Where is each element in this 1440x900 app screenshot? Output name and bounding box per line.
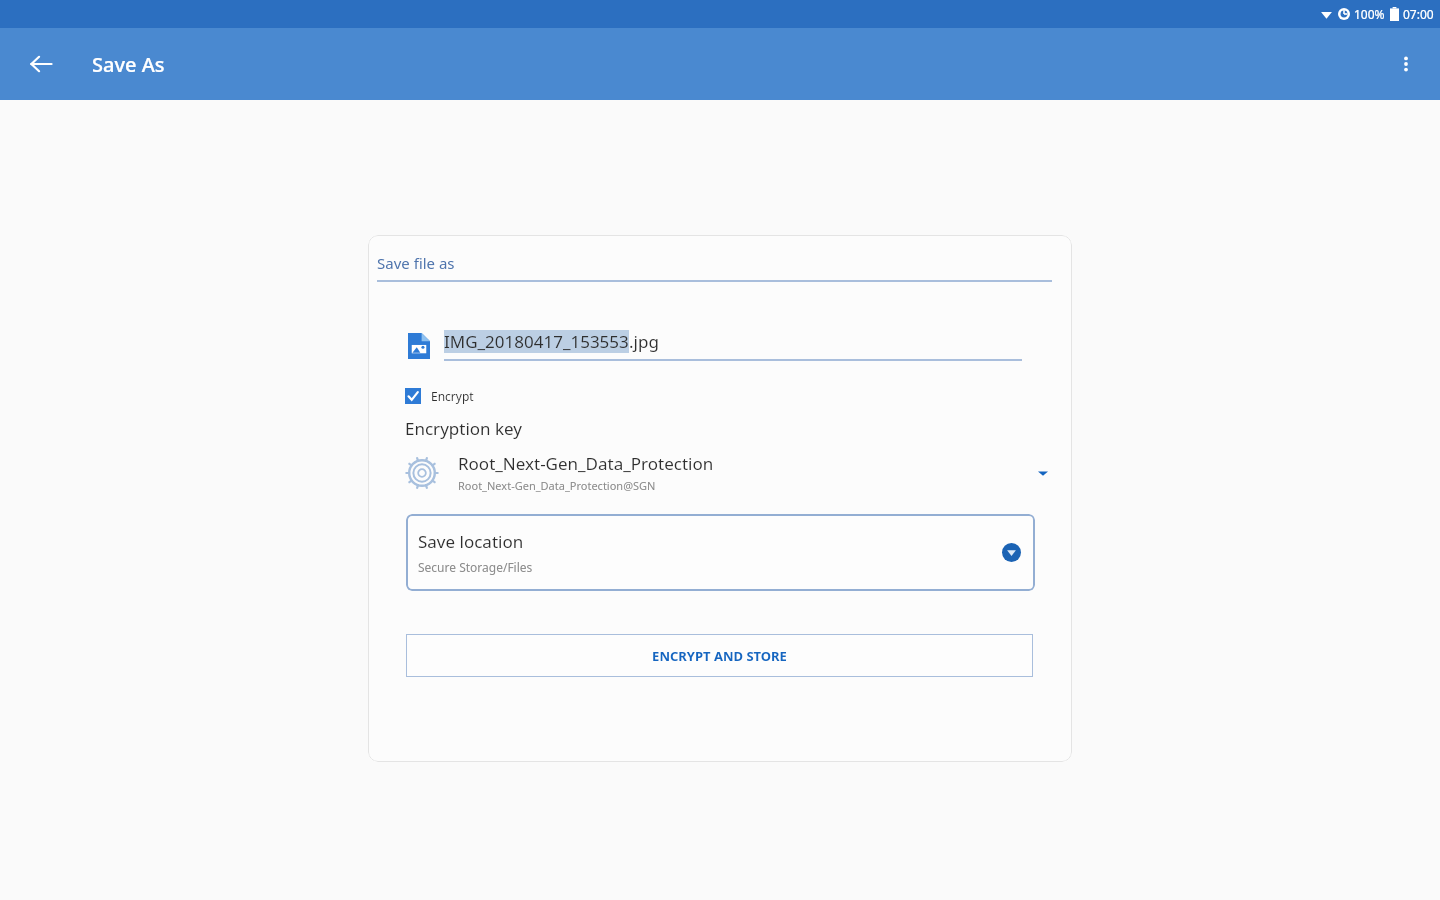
button[interactable]: Save location [406,514,1035,591]
button[interactable]: Root_Next-Gen_Data_Protection [406,452,1048,493]
staticText: Save As [92,51,165,78]
staticText: ENCRYPT AND STORE [652,647,787,665]
staticText: .jpg [629,330,659,353]
staticText: 100% [1354,6,1385,22]
staticText: Secure Storage/Files [418,559,533,575]
staticText: Save location [418,530,524,553]
staticText: Save file as [377,253,455,273]
staticText: Encrypt [431,388,474,404]
button[interactable]: Back [17,40,65,88]
staticText: Root_Next-Gen_Data_Protection [458,452,714,475]
staticText: IMG_20180417_153553 [444,330,629,353]
button[interactable]: More options [1382,40,1430,88]
button[interactable]: ENCRYPT AND STORE [406,634,1033,677]
staticText: Encryption key [405,417,522,440]
button[interactable]: Encrypt [405,388,474,404]
staticText: Root_Next-Gen_Data_Protection@SGN [458,478,656,493]
staticText: 07:00 [1403,6,1434,22]
